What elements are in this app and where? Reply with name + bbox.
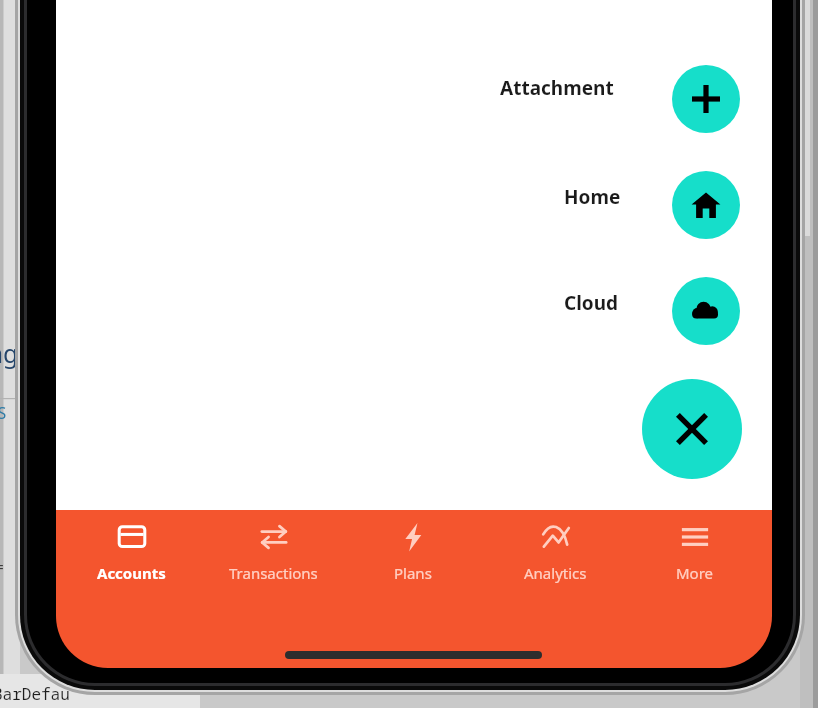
staticText: S (0, 402, 7, 424)
button[interactable]: Close menu (642, 379, 742, 479)
staticText: ng (0, 336, 19, 370)
staticText: Attachment (500, 75, 614, 101)
button[interactable]: Home (546, 170, 638, 224)
button[interactable]: Cloud (545, 276, 638, 330)
button[interactable]: Analytics (485, 521, 625, 603)
staticText: Transactions (229, 563, 318, 583)
button[interactable]: Plans (343, 521, 483, 603)
staticText: Home (564, 184, 621, 210)
button[interactable]: Attachment (672, 65, 740, 133)
button[interactable]: Transactions (203, 521, 343, 603)
button[interactable]: Cloud (672, 277, 740, 345)
button[interactable]: Attachment (475, 63, 638, 113)
staticText: = (0, 556, 5, 576)
staticText: Analytics (524, 563, 587, 583)
staticText: More (676, 563, 714, 583)
button[interactable]: Home (672, 171, 740, 239)
button[interactable]: More (625, 521, 765, 603)
staticText: Cloud (564, 290, 619, 316)
staticText: Plans (394, 563, 432, 583)
staticText: Accounts (97, 563, 166, 583)
button[interactable]: Accounts (61, 521, 201, 603)
staticText: BarDefau (0, 683, 70, 705)
